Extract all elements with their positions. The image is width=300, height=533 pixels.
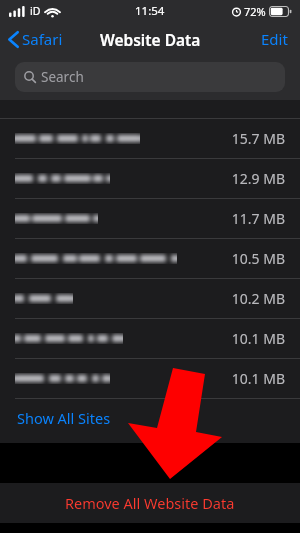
staticText: 11:54 xyxy=(135,3,165,19)
staticText: 15.7 MB xyxy=(231,129,285,148)
staticText: 10.5 MB xyxy=(231,249,285,268)
button[interactable]: 15.7 MB xyxy=(0,119,300,158)
button[interactable]: Search xyxy=(15,62,285,92)
button[interactable]: 12.9 MB xyxy=(0,159,300,198)
staticText: iD xyxy=(30,4,41,18)
staticText: Safari xyxy=(22,29,63,49)
staticText: 10.1 MB xyxy=(231,369,285,388)
button[interactable]: 10.1 MB xyxy=(0,319,300,358)
staticText: Search xyxy=(41,68,84,86)
staticText: 72% xyxy=(244,4,266,19)
staticText: 10.2 MB xyxy=(231,289,285,308)
button[interactable]: 10.1 MB xyxy=(0,359,300,398)
button[interactable]: Show All Sites xyxy=(0,399,300,437)
button[interactable]: 10.2 MB xyxy=(0,279,300,318)
staticText: Show All Sites xyxy=(17,408,111,428)
staticText: Website Data xyxy=(100,29,201,50)
staticText: 10.1 MB xyxy=(231,329,285,348)
staticText: Edit xyxy=(261,29,288,49)
button[interactable]: 11.7 MB xyxy=(0,199,300,238)
button[interactable]: Edit xyxy=(249,25,300,53)
button[interactable]: Remove All Website Data xyxy=(0,483,300,523)
staticText: Remove All Website Data xyxy=(65,493,235,513)
staticText: 12.9 MB xyxy=(231,169,285,188)
button[interactable]: Safari xyxy=(0,29,69,49)
staticText: 11.7 MB xyxy=(231,209,285,228)
button[interactable]: 10.5 MB xyxy=(0,239,300,278)
